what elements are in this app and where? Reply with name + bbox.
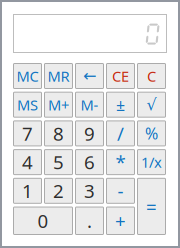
button[interactable]: 2	[44, 178, 72, 203]
staticText: MR	[47, 66, 69, 86]
staticText: √	[146, 96, 156, 114]
staticText: 2	[53, 178, 64, 203]
button[interactable]: 8	[44, 121, 72, 146]
staticText: ←	[83, 67, 96, 85]
staticText: 3	[84, 178, 95, 203]
staticText: 7	[22, 121, 33, 146]
button[interactable]: 1	[13, 178, 41, 203]
staticText: 1/x	[141, 152, 162, 172]
staticText: =	[146, 194, 157, 219]
button[interactable]: ←	[75, 63, 103, 88]
staticText: +	[115, 208, 126, 233]
staticText: -	[117, 178, 123, 203]
staticText: 1	[22, 178, 33, 203]
button[interactable]: *	[106, 150, 134, 175]
button[interactable]: -	[106, 178, 134, 203]
button[interactable]: %	[137, 121, 165, 146]
button[interactable]: M+	[44, 92, 72, 117]
staticText: 8	[53, 121, 64, 146]
button[interactable]: MR	[44, 63, 72, 88]
staticText: 4	[22, 150, 33, 174]
button[interactable]: ±	[106, 92, 134, 117]
button[interactable]: 0	[13, 207, 72, 234]
staticText: MC	[16, 66, 38, 86]
staticText: 6	[84, 150, 95, 174]
button[interactable]: /	[106, 121, 134, 146]
button[interactable]: 4	[13, 150, 41, 175]
staticText: CE	[112, 66, 129, 86]
button[interactable]: MC	[13, 63, 41, 88]
staticText: *	[115, 150, 125, 174]
button[interactable]: +	[106, 207, 134, 234]
staticText: 0	[37, 208, 48, 233]
staticText: M+	[48, 95, 69, 114]
button[interactable]: 5	[44, 150, 72, 175]
button[interactable]: 3	[75, 178, 103, 203]
button[interactable]: 6	[75, 150, 103, 175]
staticText: 5	[53, 150, 64, 174]
button[interactable]: C	[137, 63, 165, 88]
button[interactable]: CE	[106, 63, 134, 88]
staticText: /	[117, 121, 124, 146]
staticText: %	[145, 123, 158, 144]
button[interactable]: M-	[75, 92, 103, 117]
button[interactable]: 7	[13, 121, 41, 146]
button[interactable]: .	[75, 207, 103, 234]
button[interactable]: √	[137, 92, 165, 117]
staticText: M-	[80, 95, 98, 114]
button[interactable]: MS	[13, 92, 41, 117]
staticText: MS	[17, 95, 38, 114]
button[interactable]: 1/x	[137, 150, 165, 175]
staticText: .	[87, 208, 92, 233]
button[interactable]: 9	[75, 121, 103, 146]
staticText: ±	[116, 94, 125, 115]
button[interactable]: =	[137, 178, 165, 234]
staticText: C	[147, 66, 156, 86]
staticText: 9	[84, 121, 95, 146]
